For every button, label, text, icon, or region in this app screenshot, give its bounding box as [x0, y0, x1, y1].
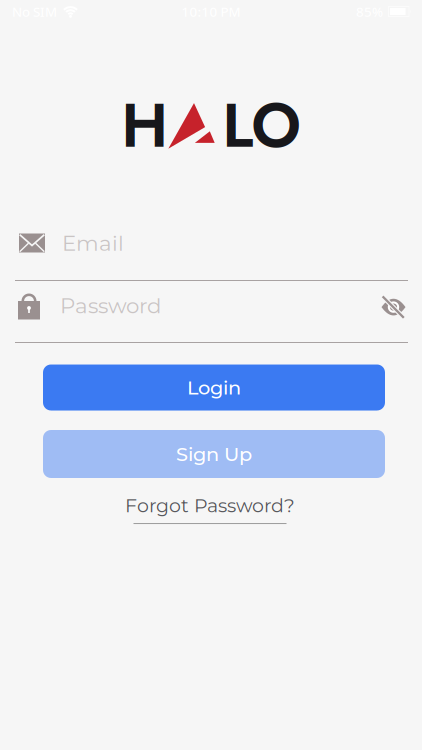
button[interactable]: Email: [0, 223, 422, 263]
staticText: LO: [222, 81, 301, 170]
staticText: H: [121, 81, 168, 170]
staticText: Email: [62, 230, 124, 256]
staticText: Forgot Password?: [125, 494, 295, 517]
staticText: Password: [60, 292, 161, 318]
button[interactable]: [381, 295, 407, 320]
button[interactable]: Password: [0, 285, 422, 325]
staticText: Sign Up: [176, 442, 252, 466]
button[interactable]: Forgot Password?: [125, 494, 295, 524]
button[interactable]: Login: [43, 364, 385, 410]
staticText: Login: [187, 376, 241, 399]
button[interactable]: Sign Up: [43, 430, 385, 478]
